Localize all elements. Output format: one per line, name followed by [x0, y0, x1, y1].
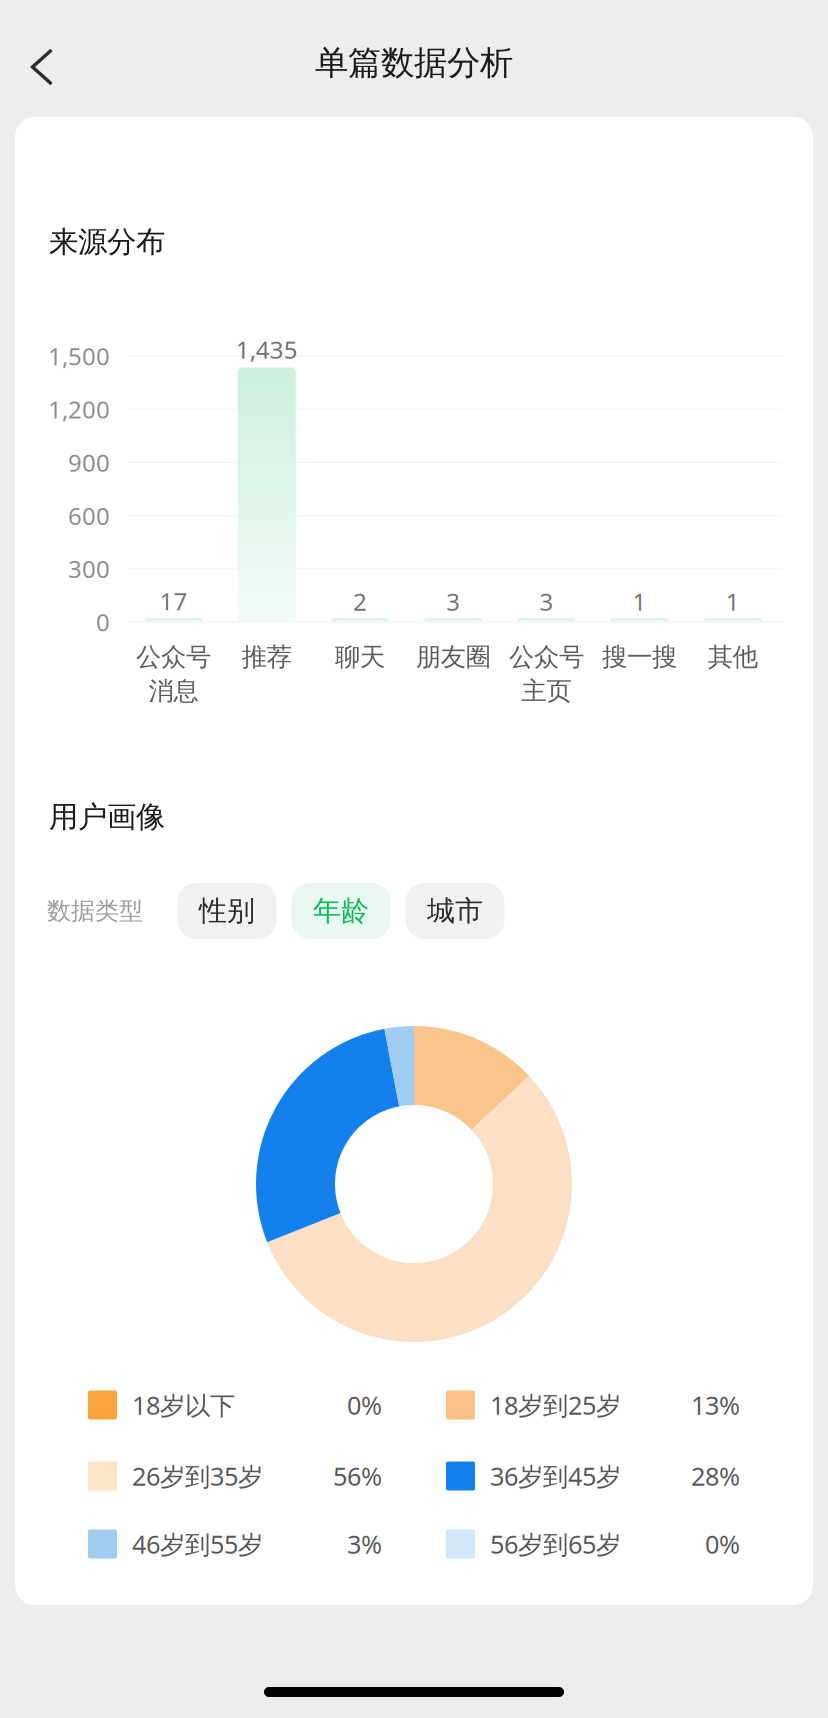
staticText: 用户画像: [49, 799, 165, 835]
button[interactable]: 性别: [177, 883, 276, 939]
staticText: 公众号: [509, 641, 584, 672]
staticText: 0%: [347, 1388, 382, 1422]
staticText: 0: [96, 606, 110, 638]
staticText: 18岁到25岁: [490, 1388, 621, 1422]
staticText: 聊天: [335, 641, 385, 672]
staticText: 其他: [708, 641, 758, 672]
button[interactable]: 年龄: [291, 883, 390, 939]
staticText: 13%: [691, 1388, 740, 1422]
staticText: 56岁到65岁: [490, 1527, 621, 1561]
staticText: 年龄: [313, 894, 369, 928]
staticText: 1: [633, 586, 647, 617]
staticText: 城市: [427, 894, 483, 928]
staticText: 900: [68, 446, 110, 478]
staticText: 300: [68, 553, 110, 585]
staticText: 公众号: [136, 641, 211, 672]
staticText: 主页: [521, 675, 571, 706]
staticText: 单篇数据分析: [315, 42, 513, 83]
staticText: 3: [446, 586, 460, 617]
staticText: 1,200: [48, 393, 110, 425]
staticText: 1,500: [48, 340, 110, 372]
staticText: 2: [353, 586, 367, 617]
staticText: 0%: [705, 1527, 740, 1561]
staticText: 17: [160, 585, 188, 617]
staticText: 26岁到35岁: [132, 1459, 263, 1493]
staticText: 消息: [149, 675, 199, 706]
staticText: 3%: [347, 1527, 382, 1561]
staticText: 搜一搜: [602, 641, 677, 672]
staticText: 18岁以下: [132, 1388, 235, 1422]
staticText: 46岁到55岁: [132, 1527, 263, 1561]
staticText: 1,435: [236, 334, 298, 365]
button[interactable]: Back: [0, 17, 90, 117]
staticText: 3: [539, 586, 553, 617]
staticText: 28%: [691, 1459, 740, 1493]
staticText: 来源分布: [49, 224, 165, 260]
staticText: 600: [68, 500, 110, 532]
staticText: 36岁到45岁: [490, 1459, 621, 1493]
staticText: 1: [726, 586, 740, 617]
staticText: 数据类型: [47, 896, 143, 926]
staticText: 朋友圈: [416, 641, 491, 672]
button[interactable]: 城市: [405, 883, 504, 939]
staticText: 性别: [199, 894, 255, 928]
staticText: 推荐: [242, 641, 292, 672]
staticText: 56%: [333, 1459, 382, 1493]
